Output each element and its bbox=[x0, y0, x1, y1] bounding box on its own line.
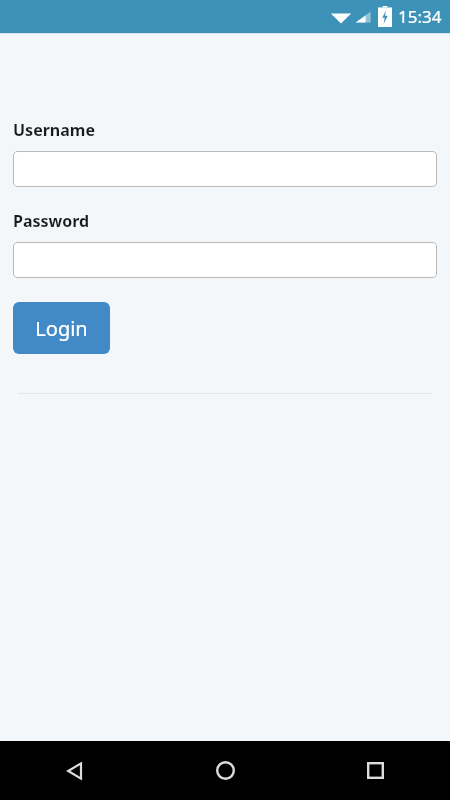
button[interactable] bbox=[13, 242, 437, 278]
staticText: 15:34 bbox=[398, 5, 442, 28]
button[interactable] bbox=[13, 151, 437, 187]
staticText: Login bbox=[35, 315, 88, 342]
button[interactable]: Back bbox=[0, 741, 150, 800]
button[interactable]: Login bbox=[13, 302, 110, 354]
button[interactable]: Home bbox=[150, 741, 300, 800]
staticText: Username bbox=[13, 119, 95, 141]
staticText: Password bbox=[13, 210, 90, 232]
button[interactable]: Recent apps bbox=[300, 741, 450, 800]
